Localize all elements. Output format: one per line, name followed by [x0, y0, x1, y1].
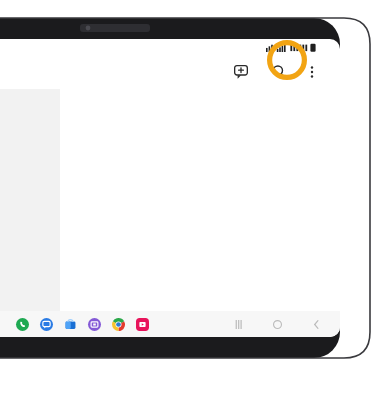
- button[interactable]: Gallery: [86, 316, 102, 332]
- button[interactable]: Home: [267, 314, 287, 334]
- button[interactable]: Messages: [38, 316, 54, 332]
- button[interactable]: Store: [62, 316, 78, 332]
- button[interactable]: Phone: [14, 316, 30, 332]
- button[interactable]: More options: [300, 60, 324, 84]
- button[interactable]: Recents: [228, 314, 248, 334]
- button[interactable]: New message: [226, 57, 256, 87]
- button[interactable]: Back: [306, 314, 326, 334]
- button[interactable]: Search: [266, 59, 292, 85]
- button[interactable]: Chrome: [110, 316, 126, 332]
- button[interactable]: YouTube: [134, 316, 150, 332]
